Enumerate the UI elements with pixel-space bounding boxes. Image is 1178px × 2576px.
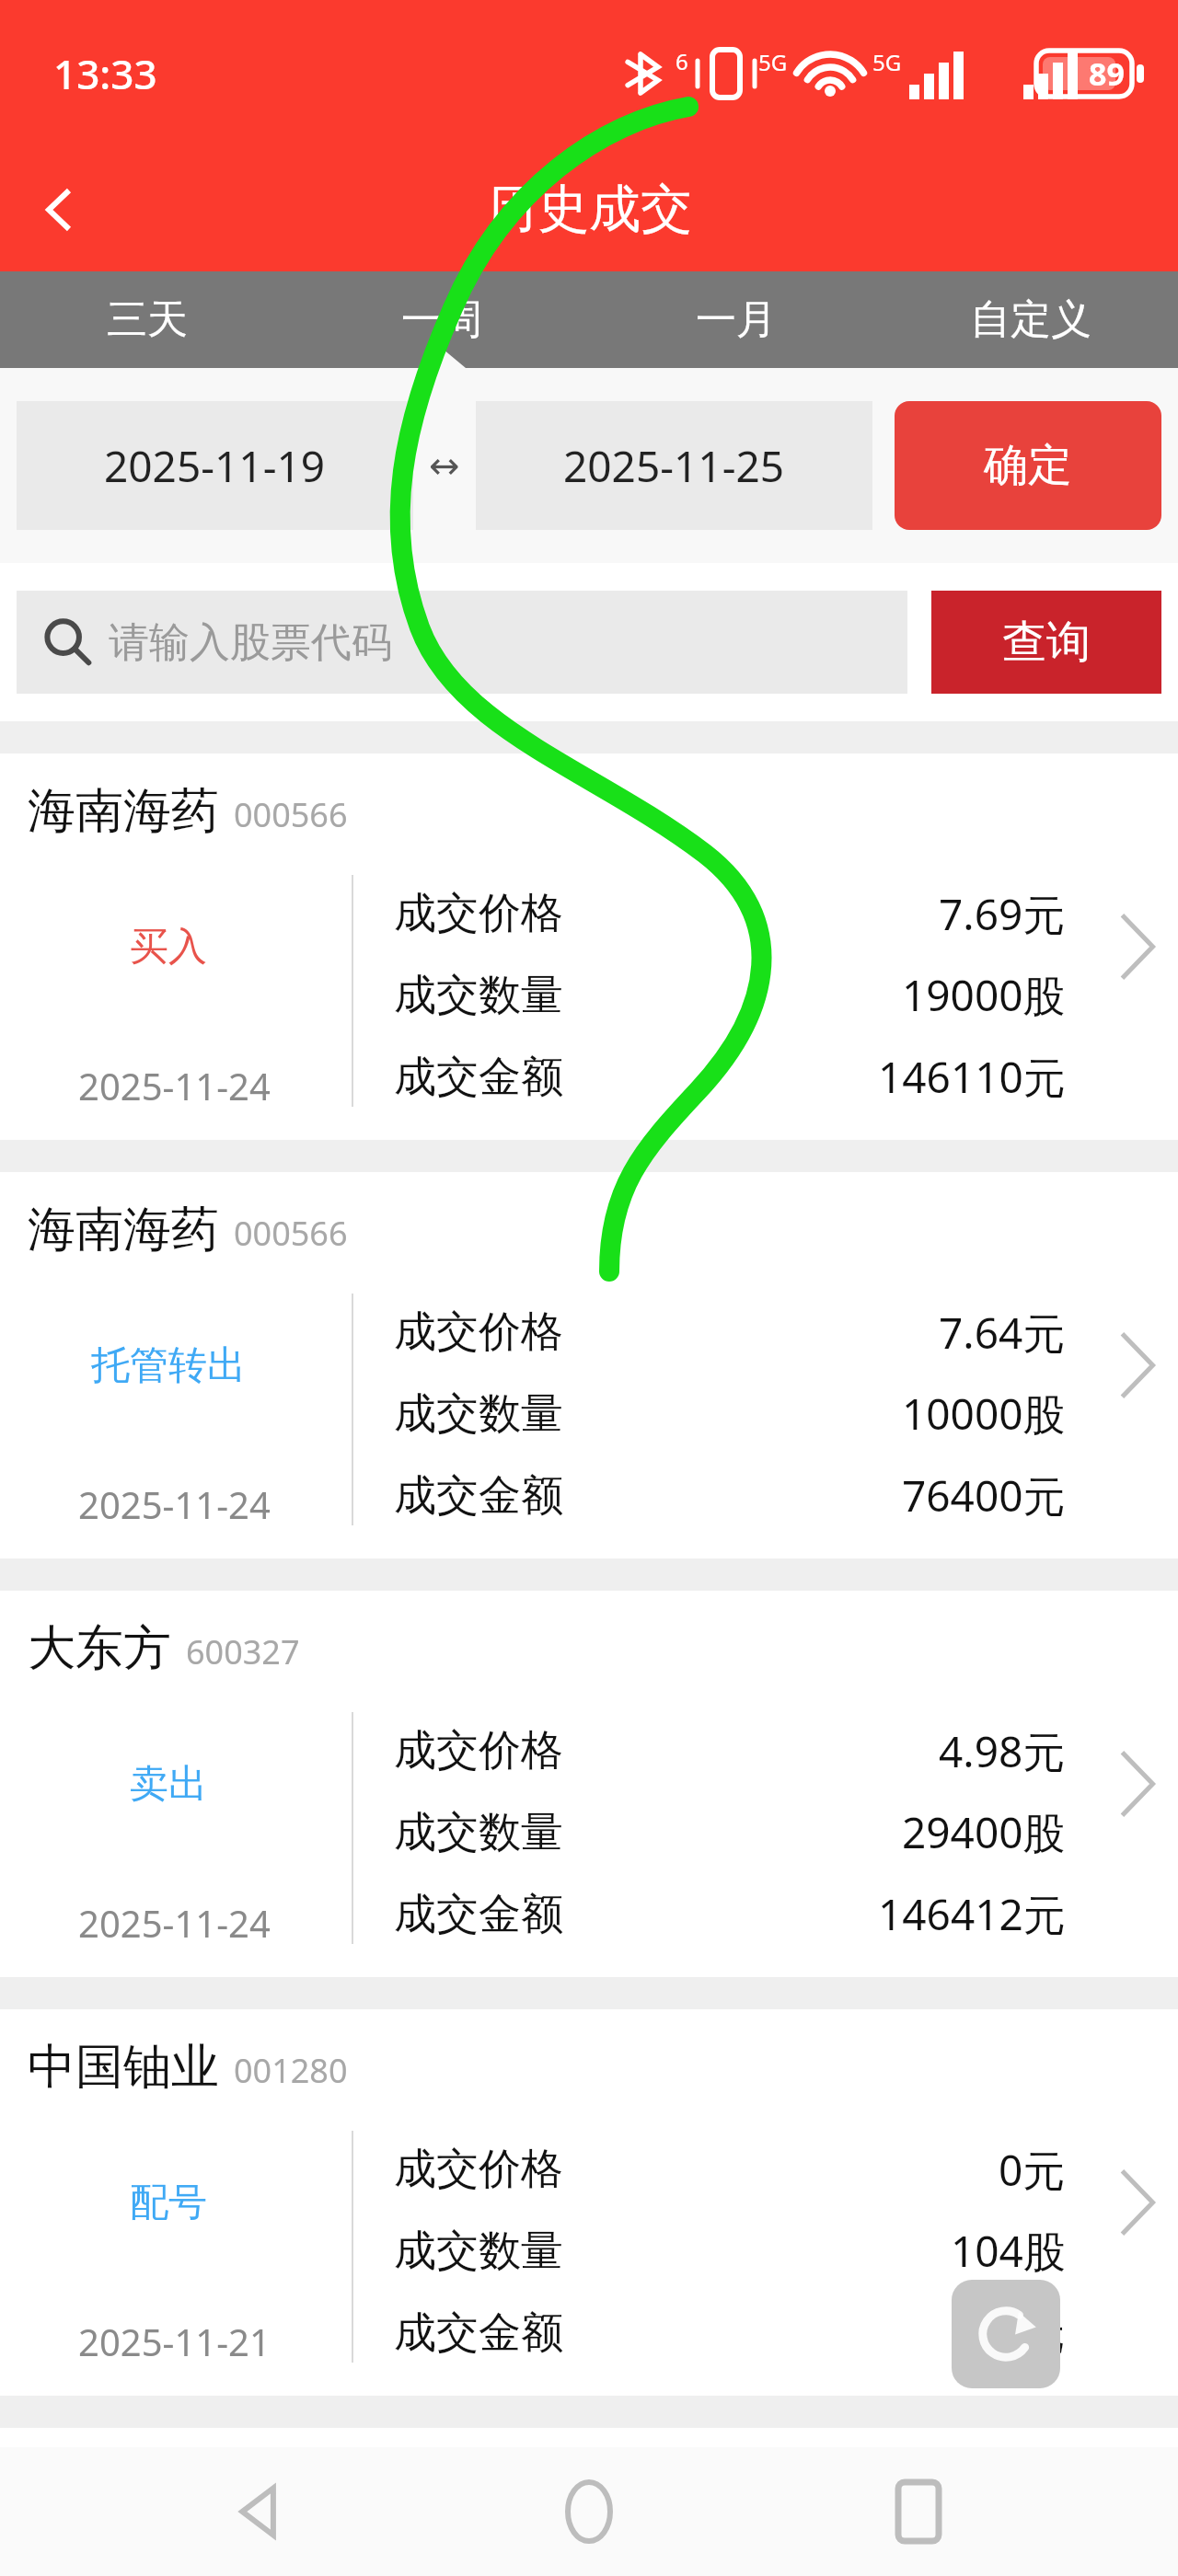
staticText: 一周: [401, 294, 482, 345]
staticText: 19000股: [902, 966, 1066, 1024]
staticText: 10000股: [902, 1385, 1066, 1443]
staticText: 自定义: [970, 294, 1091, 345]
staticText: 000566: [234, 792, 348, 837]
staticText: 配号: [130, 2179, 207, 2227]
staticText: 146110元: [878, 1048, 1066, 1106]
button[interactable]: 自定义: [883, 271, 1178, 368]
staticText: 2025-11-24: [78, 1479, 271, 1529]
staticText: 大东方: [28, 1618, 171, 1679]
staticText: 成交数量: [394, 1806, 563, 1859]
staticText: 成交价格: [394, 1724, 563, 1777]
button[interactable]: 一周: [294, 271, 589, 368]
staticText: 卖出: [130, 1760, 207, 1809]
staticText: 成交数量: [394, 1387, 563, 1441]
button[interactable]: Recent apps: [849, 2447, 987, 2576]
staticText: 成交金额: [394, 1051, 563, 1104]
staticText: 一月: [696, 294, 777, 345]
button[interactable]: 确定: [895, 401, 1161, 530]
staticText: 成交价格: [394, 887, 563, 940]
staticText: 成交价格: [394, 2143, 563, 2196]
staticText: 7.69元: [939, 885, 1066, 943]
staticText: 中国铀业: [28, 2037, 219, 2098]
staticText: 146412元: [878, 1885, 1066, 1943]
staticText: 2025-11-24: [78, 1898, 271, 1948]
staticText: 5G: [758, 47, 788, 77]
button[interactable]: 一月: [589, 271, 883, 368]
staticText: ↔: [429, 444, 460, 488]
staticText: 历史成交: [486, 177, 692, 242]
staticText: 2025-11-25: [563, 437, 785, 495]
staticText: 查询: [1002, 615, 1091, 670]
button[interactable]: Home: [520, 2447, 658, 2576]
button[interactable]: 2025-11-19: [17, 401, 413, 530]
staticText: 成交金额: [394, 2306, 563, 2360]
button[interactable]: 大东方: [0, 1591, 1178, 1977]
button[interactable]: 海南海药: [0, 1172, 1178, 1558]
staticText: 成交数量: [394, 2225, 563, 2278]
button[interactable]: Back: [191, 2447, 329, 2576]
staticText: 13:33: [53, 46, 157, 101]
staticText: 0元: [999, 2141, 1066, 2199]
staticText: 海南海药: [28, 1200, 219, 1260]
button[interactable]: 海南海药: [0, 753, 1178, 1140]
staticText: 请输入股票代码: [109, 617, 392, 668]
staticText: 89: [1089, 52, 1125, 95]
staticText: 三天: [107, 294, 188, 345]
staticText: 2025-11-21: [78, 2317, 271, 2366]
staticText: 海南海药: [28, 781, 219, 842]
staticText: 成交金额: [394, 1888, 563, 1941]
staticText: 买入: [130, 923, 207, 972]
staticText: 成交价格: [394, 1305, 563, 1359]
button[interactable]: Back: [0, 150, 120, 270]
staticText: 0元: [999, 2304, 1066, 2362]
staticText: 成交金额: [394, 1469, 563, 1523]
button[interactable]: 中国铀业: [0, 2009, 1178, 2396]
staticText: 000566: [234, 1211, 348, 1256]
button[interactable]: 2025-11-25: [476, 401, 872, 530]
button[interactable]: 请输入股票代码: [17, 591, 907, 694]
staticText: 7.64元: [939, 1304, 1066, 1362]
staticText: 成交数量: [394, 969, 563, 1022]
staticText: 600327: [186, 1629, 300, 1674]
staticText: 5G: [872, 47, 902, 77]
staticText: 2025-11-19: [104, 437, 326, 495]
staticText: 确定: [984, 438, 1072, 493]
staticText: 托管转出: [91, 1341, 246, 1390]
staticText: 104股: [951, 2222, 1066, 2280]
staticText: 6: [676, 46, 688, 76]
other: Loading: [952, 2280, 1060, 2388]
staticText: 2025-11-24: [78, 1061, 271, 1110]
button[interactable]: 三天: [0, 271, 294, 368]
staticText: 001280: [234, 2048, 348, 2093]
button[interactable]: 查询: [931, 591, 1161, 694]
staticText: 4.98元: [939, 1722, 1066, 1780]
staticText: 29400股: [902, 1803, 1066, 1861]
staticText: 76400元: [902, 1466, 1066, 1524]
